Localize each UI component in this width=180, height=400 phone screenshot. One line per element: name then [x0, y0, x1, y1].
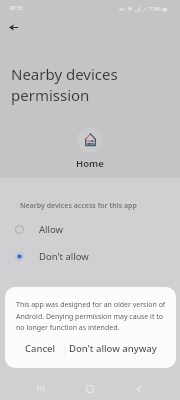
staticText: Home	[76, 157, 104, 170]
staticText: Allow	[39, 223, 63, 236]
button[interactable]: Back	[2, 16, 25, 39]
button[interactable]: Don't allow	[0, 243, 180, 269]
staticText: Cancel	[25, 342, 56, 355]
staticText: Don't allow	[39, 250, 89, 263]
button[interactable]: Home	[77, 377, 103, 400]
staticText: 73%	[149, 5, 161, 13]
staticText: This app was designed for an older versi…	[16, 300, 169, 332]
button[interactable]: Allow	[0, 216, 180, 242]
button[interactable]: Don't allow anyway	[65, 336, 160, 360]
button[interactable]: Cancel	[16, 336, 64, 360]
staticText: Don't allow anyway	[69, 342, 157, 355]
staticText: 07:31	[10, 5, 23, 12]
staticText: Nearby devices access for this app	[20, 201, 137, 211]
button[interactable]: Recents	[28, 377, 54, 400]
staticText: Nearby devices permission	[11, 64, 118, 106]
